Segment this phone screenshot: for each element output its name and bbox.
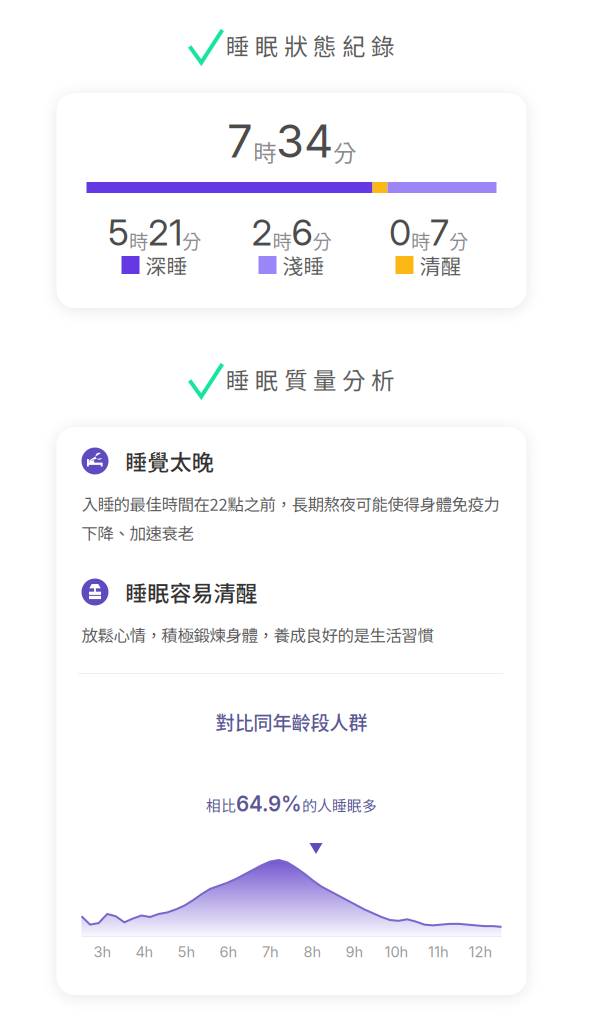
staticText: 9h [345, 943, 363, 961]
staticText: 64.9% [236, 791, 302, 816]
staticText: 34 [276, 114, 333, 168]
staticText: 下降、加速衰老 [81, 521, 193, 544]
staticText: 8h [303, 943, 321, 961]
staticText: 清醒 [419, 250, 461, 280]
staticText: 3h [93, 943, 111, 961]
staticText: 12h [468, 943, 492, 961]
staticText: 5 [108, 211, 129, 254]
staticText: 11h [428, 943, 449, 961]
staticText: 7 [430, 211, 449, 254]
staticText: 睡眠容易清醒 [125, 576, 257, 608]
staticText: 6h [219, 943, 237, 961]
staticText: 0 [389, 211, 411, 254]
staticText: 7h [262, 943, 279, 961]
staticText: 時 [411, 226, 430, 254]
staticText: 的人睡眠多 [302, 794, 377, 816]
staticText: 分 [449, 226, 468, 254]
staticText: 睡覺太晚 [125, 445, 213, 477]
staticText: 睡眠狀態紀錄 [226, 28, 394, 62]
staticText: 分 [182, 226, 201, 254]
staticText: 10h [384, 943, 408, 961]
staticText: 分 [312, 226, 331, 254]
staticText: 深睡 [145, 250, 187, 280]
staticText: 時 [253, 134, 276, 168]
staticText: 睡眠質量分析 [226, 362, 394, 396]
staticText: 放鬆心情，積極鍛煉身體，養成良好的是生活習慣 [81, 623, 433, 646]
staticText: 時 [129, 226, 148, 254]
staticText: 相比 [206, 794, 236, 816]
staticText: 4h [135, 943, 153, 961]
staticText: 2 [251, 211, 272, 254]
staticText: 6 [291, 211, 312, 254]
staticText: 對比同年齡段人群 [215, 708, 367, 735]
staticText: 淺睡 [282, 250, 324, 280]
staticText: 7 [227, 114, 253, 168]
staticText: 分 [333, 134, 356, 168]
staticText: 5h [177, 943, 195, 961]
staticText: 時 [272, 226, 291, 254]
staticText: 21 [148, 211, 182, 254]
staticText: 入睡的最佳時間在22點之前，長期熬夜可能使得身體免疫力 [81, 492, 499, 515]
